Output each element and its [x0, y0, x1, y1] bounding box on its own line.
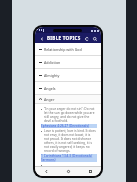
button[interactable]: Anger: [35, 95, 101, 104]
staticText: Love is patient, love is kind. It does n…: [44, 129, 96, 153]
button[interactable]: Search: [91, 35, 98, 42]
button[interactable]: Relationship with God: [35, 43, 101, 56]
staticText: Addiction: [44, 60, 61, 65]
staticText: Ephesians 4:26-27 (Devotionals): [41, 124, 89, 128]
staticText: Almighty: [44, 73, 60, 78]
button[interactable]: Back: [38, 35, 45, 42]
button[interactable]: Almighty: [35, 69, 101, 82]
staticText: Angels: [44, 86, 56, 91]
button[interactable]: Ephesians 4:26-27 (Devotionals): [41, 124, 97, 128]
staticText: "In your anger do not sin": Do not let t…: [44, 107, 96, 123]
staticText: BIBLE TOPICS: [47, 35, 81, 41]
staticText: 1 Corinthians 13:4-5 (Devotionals/Sermon…: [41, 154, 97, 162]
staticText: Anger: [44, 97, 55, 102]
button[interactable]: 1 Corinthians 13:4-5 (Devotionals/Sermon…: [41, 154, 97, 162]
button[interactable]: Angels: [35, 82, 101, 95]
button[interactable]: Addiction: [35, 56, 101, 69]
staticText: Relationship with God: [44, 47, 82, 52]
button[interactable]: Refresh: [83, 35, 90, 42]
button[interactable]: Recents: [79, 167, 101, 176]
button[interactable]: Home: [57, 167, 79, 176]
button[interactable]: Back: [35, 167, 57, 176]
